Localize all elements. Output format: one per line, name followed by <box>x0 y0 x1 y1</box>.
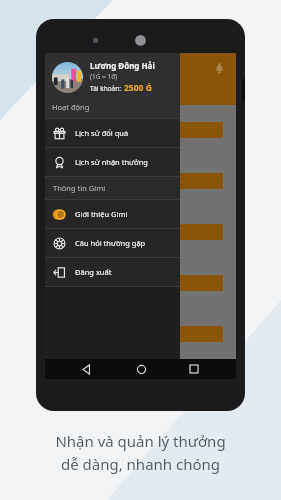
button[interactable]: +3200Ġ <box>46 173 223 189</box>
button[interactable]: Đăng xuất <box>45 258 180 286</box>
button[interactable]: Home <box>130 359 152 379</box>
button[interactable]: +2000Ġ <box>46 224 223 240</box>
button[interactable]: Lịch sử đổi quà <box>45 119 180 147</box>
staticText: Lịch sử đổi quà <box>75 128 129 138</box>
staticText: Hoạt động <box>52 102 90 112</box>
button[interactable]: Giới thiệu Gimi <box>45 200 180 228</box>
staticText: (1Ġ = 1đ) <box>90 72 118 81</box>
staticText: Tài khoản: <box>90 84 121 93</box>
staticText: Lịch sử nhận thưởng <box>75 157 148 167</box>
button[interactable]: Notifications <box>209 58 229 78</box>
staticText: Thông tin Gimi <box>53 183 106 193</box>
staticText: Giới thiệu Gimi <box>75 209 128 219</box>
staticText: Nhận và quản lý thưởng <box>0 431 281 451</box>
button[interactable]: Câu hỏi thường gặp <box>45 229 180 257</box>
button[interactable]: +1200Ġ <box>46 326 223 342</box>
staticText: Đăng xuất <box>75 267 112 277</box>
staticText: +2000Ġ <box>50 227 76 237</box>
staticText: Câu hỏi thường gặp <box>75 238 146 248</box>
button[interactable]: Back <box>76 359 98 379</box>
staticText: dễ dàng, nhanh chóng <box>0 454 281 474</box>
button[interactable]: Lịch sử nhận thưởng <box>45 148 180 176</box>
staticText: +1500Ġ <box>50 278 76 288</box>
staticText: +3300Ġ <box>50 125 76 135</box>
button[interactable]: Recents <box>183 359 205 379</box>
button[interactable]: +1500Ġ <box>46 275 223 291</box>
staticText: +3200Ġ <box>50 176 76 186</box>
staticText: Lương Đông Hải <box>90 60 155 71</box>
staticText: 2500 Ġ <box>124 82 152 94</box>
button[interactable]: +3300Ġ <box>46 122 223 138</box>
